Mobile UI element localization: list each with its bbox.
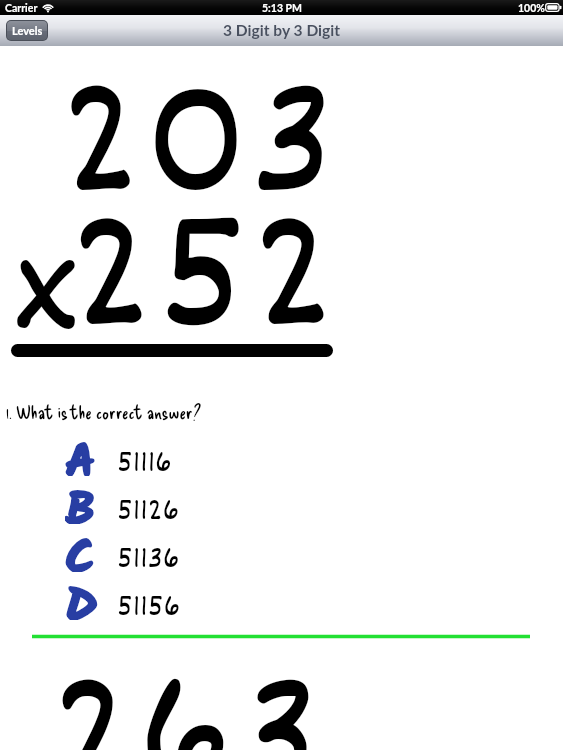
staticText: 51126 (117, 488, 180, 536)
staticText: 252 (68, 155, 339, 419)
staticText: 263 (50, 616, 322, 750)
staticText: A (65, 428, 96, 476)
button[interactable]: C (60, 523, 185, 571)
staticText: 51156 (117, 584, 181, 632)
staticText: 1. What is the correct answer? (6, 400, 202, 423)
staticText: C (65, 524, 96, 572)
button[interactable]: B (60, 475, 185, 523)
staticText: 5:13 PM (262, 2, 302, 15)
staticText: 203 (59, 22, 337, 284)
staticText: 100% (518, 2, 545, 15)
staticText: 3 Digit by 3 Digit (223, 21, 341, 40)
staticText: C (65, 524, 96, 572)
staticText: D (65, 572, 98, 620)
staticText: Carrier (5, 2, 38, 15)
staticText: 51136 (117, 536, 180, 584)
staticText: A (65, 428, 96, 476)
staticText: x (11, 190, 78, 404)
staticText: D (65, 572, 98, 620)
staticText: Levels (12, 24, 43, 37)
staticText: B (65, 476, 96, 524)
button[interactable]: A (60, 427, 185, 475)
button[interactable]: Levels (7, 21, 47, 40)
button[interactable]: D (60, 571, 185, 619)
staticText: 51116 (117, 440, 172, 488)
staticText: B (65, 476, 96, 524)
